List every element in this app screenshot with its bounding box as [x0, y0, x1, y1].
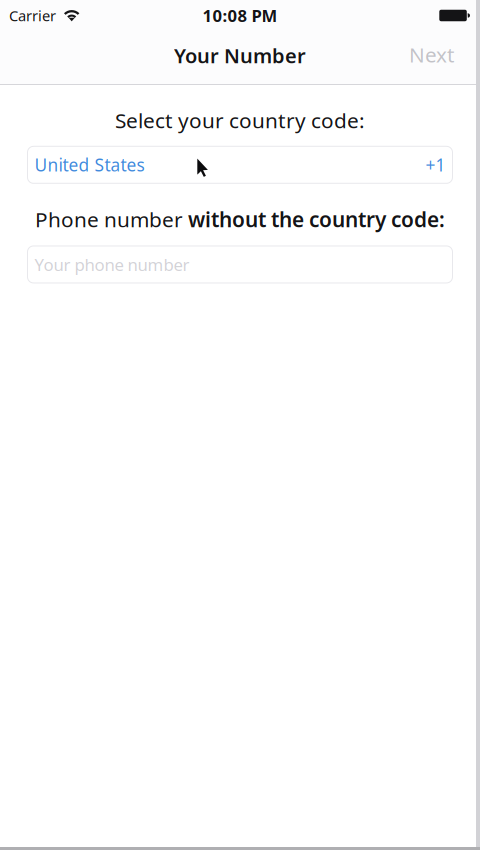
staticText: Phone number without the country code: [35, 205, 445, 233]
staticText: Select your country code: [115, 106, 365, 134]
button[interactable]: Your phone number [27, 246, 452, 283]
staticText: 10:08 PM [202, 4, 277, 27]
staticText: Your Number [174, 42, 306, 69]
button[interactable]: United States [27, 146, 452, 183]
button[interactable]: Next [393, 32, 480, 82]
staticText: +1 [425, 153, 445, 177]
staticText: Carrier [9, 5, 56, 25]
staticText: United States [34, 153, 144, 177]
staticText: Next [409, 40, 454, 68]
staticText: Your phone number [34, 253, 189, 276]
